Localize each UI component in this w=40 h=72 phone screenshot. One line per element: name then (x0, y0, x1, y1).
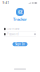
button[interactable]: Sign In (12, 42, 27, 46)
staticText: Username (7, 27, 20, 31)
staticText: EZ (18, 9, 22, 15)
staticText: 9:41 (3, 1, 10, 5)
button[interactable]: Show password (34, 33, 36, 35)
staticText: Password (7, 32, 19, 36)
staticText: Sign In (15, 42, 25, 46)
staticText: Tracker (13, 16, 27, 22)
